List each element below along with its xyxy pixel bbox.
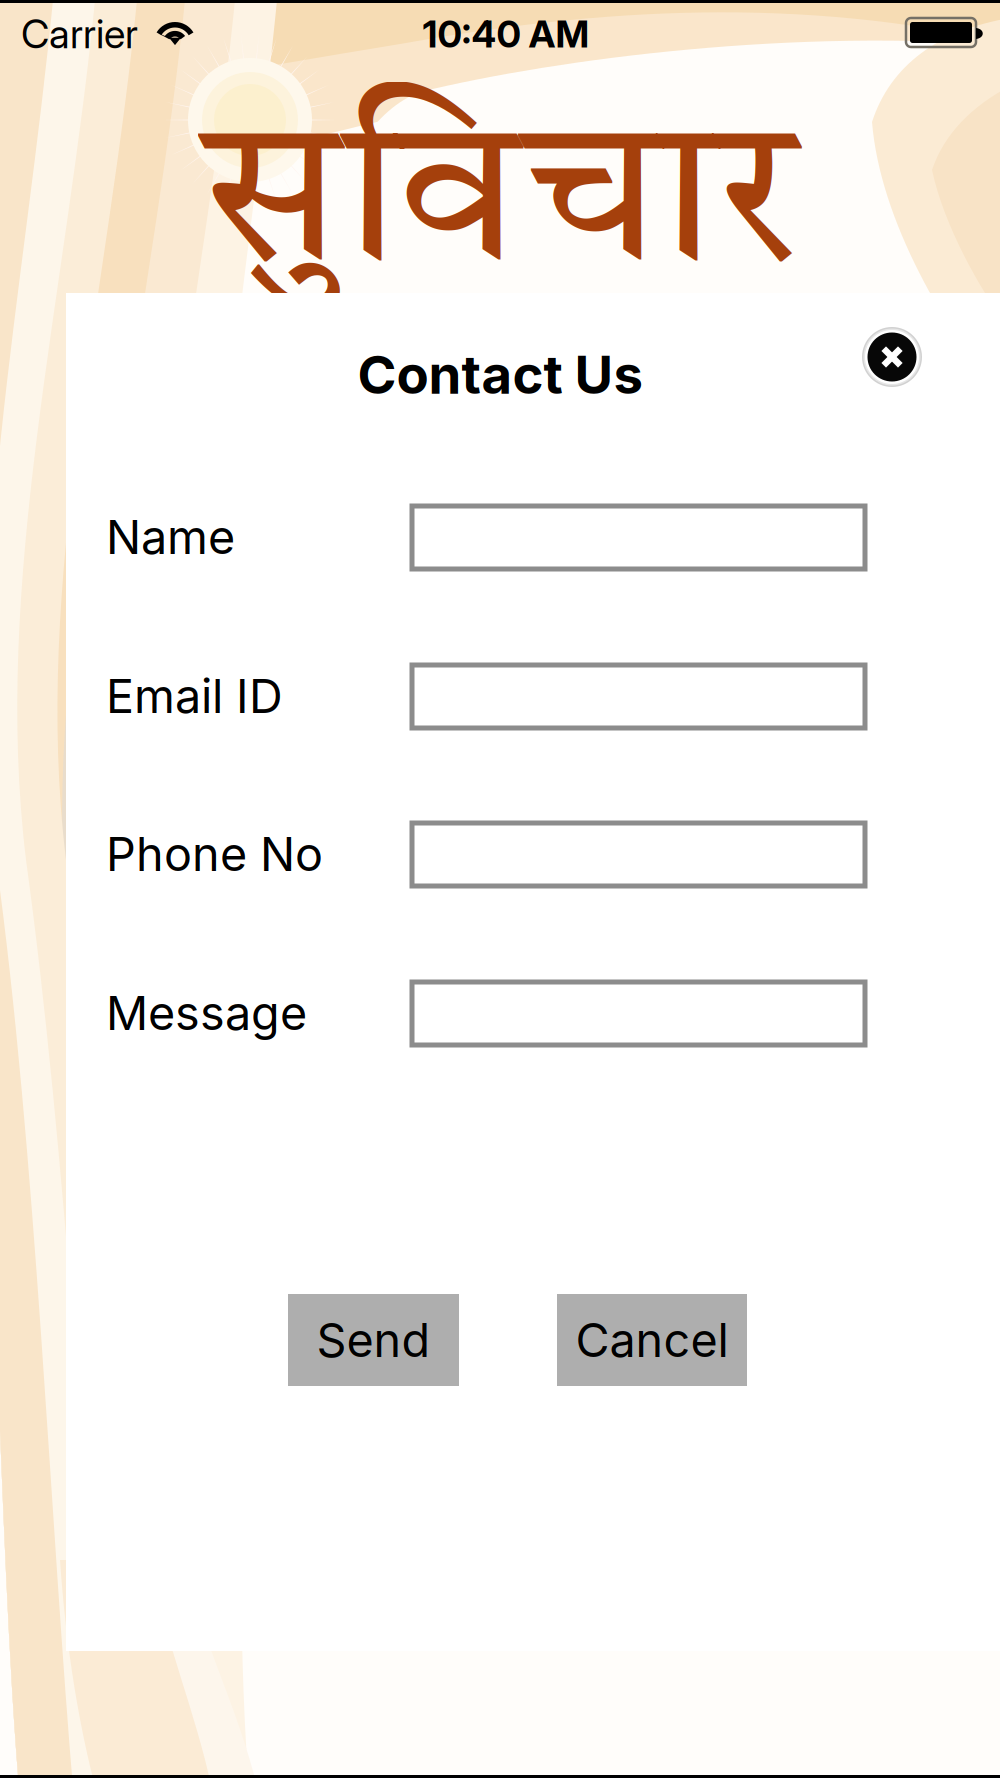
button[interactable]: Cancel (557, 1294, 747, 1386)
button[interactable]: Phone No (412, 823, 865, 886)
button[interactable]: Message (412, 982, 865, 1045)
staticText: Name (106, 509, 235, 565)
staticText: 10:40 AM (422, 11, 589, 57)
button[interactable]: Close (861, 326, 923, 388)
staticText: Email ID (106, 668, 283, 724)
staticText: Message (106, 985, 307, 1041)
staticText: Phone No (106, 826, 323, 882)
button[interactable]: Name (412, 506, 865, 569)
staticText: Carrier (21, 10, 138, 58)
button[interactable]: Send (288, 1294, 459, 1386)
staticText: Contact Us (357, 343, 642, 406)
staticText: Cancel (575, 1312, 728, 1368)
staticText: Send (316, 1312, 430, 1368)
staticText: सुविचार (203, 106, 796, 306)
button[interactable]: Email ID (412, 665, 865, 728)
